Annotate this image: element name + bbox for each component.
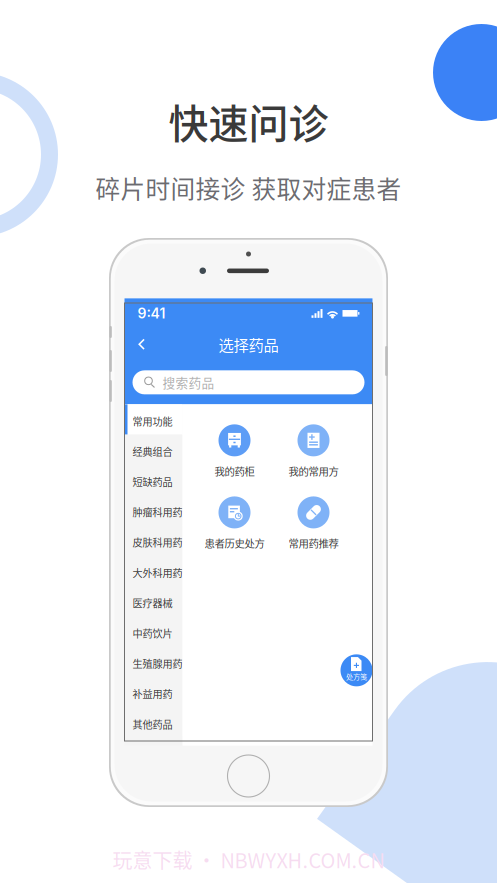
staticText: 常用药推荐	[288, 535, 338, 550]
staticText: 9:41	[137, 305, 165, 322]
button[interactable]: 补益用药	[124, 677, 182, 707]
staticText: 我的常用方	[288, 463, 338, 478]
staticText: 短缺药品	[132, 474, 172, 489]
button[interactable]: 经典组合	[124, 435, 182, 465]
button[interactable]: 返回	[130, 332, 152, 357]
button[interactable]: 处方笺	[340, 654, 372, 686]
staticText: 经典组合	[132, 444, 172, 459]
button[interactable]: 大外科用药	[124, 556, 182, 586]
button[interactable]: 我的常用方	[288, 424, 338, 478]
button[interactable]: 患者历史处方	[204, 496, 264, 550]
staticText: 医疗器械	[132, 595, 172, 610]
staticText: 我的药柜	[214, 463, 254, 478]
button[interactable]: 皮肤科用药	[124, 525, 182, 556]
staticText: 处方笺	[346, 671, 367, 682]
button[interactable]: 其他药品	[124, 707, 182, 738]
staticText: 快速问诊	[168, 92, 328, 150]
staticText: 选择药品	[218, 333, 278, 355]
staticText: 生殖腺用药	[132, 656, 182, 671]
button[interactable]: 我的药柜	[214, 424, 254, 478]
staticText: 皮肤科用药	[132, 535, 182, 550]
staticText: 中药饮片	[132, 626, 172, 640]
staticText: 肿瘤科用药	[132, 505, 182, 519]
button[interactable]: 常用药推荐	[288, 496, 338, 550]
button[interactable]: 常用功能	[124, 404, 182, 435]
staticText: 其他药品	[132, 717, 172, 731]
staticText: 大外科用药	[132, 565, 182, 580]
staticText: 患者历史处方	[204, 535, 264, 550]
button[interactable]: 中药饮片	[124, 616, 182, 647]
button[interactable]: 短缺药品	[124, 465, 182, 495]
button[interactable]: 肿瘤科用药	[124, 495, 182, 525]
staticText: 补益用药	[132, 686, 172, 701]
staticText: 搜索药品	[162, 373, 214, 391]
button[interactable]: 医疗器械	[124, 586, 182, 616]
button[interactable]: 生殖腺用药	[124, 647, 182, 677]
staticText: 常用功能	[132, 414, 172, 428]
staticText: 玩意下载 · NBWYXH.COM.CN	[112, 845, 384, 874]
staticText: 碎片时间接诊 获取对症患者	[95, 170, 401, 206]
button[interactable]: 搜索药品	[124, 370, 372, 394]
